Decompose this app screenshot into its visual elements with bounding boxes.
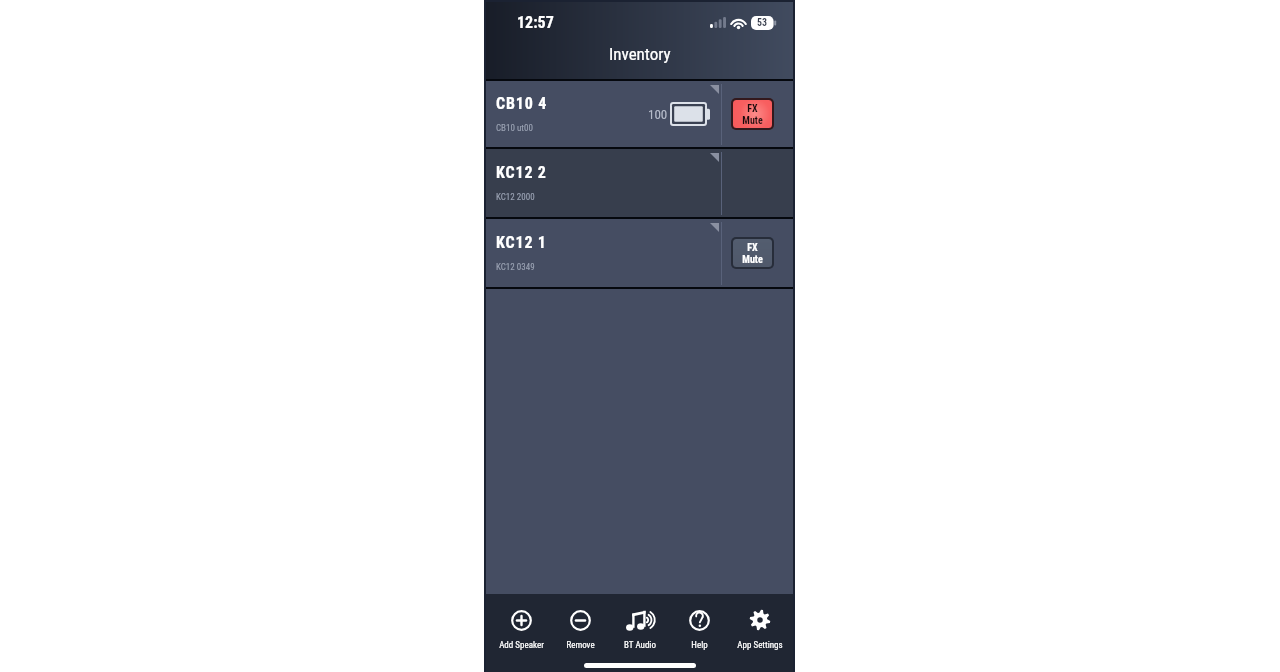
staticText: 100 <box>648 107 668 122</box>
button[interactable]: FX Mute <box>733 100 772 128</box>
staticText: App Settings <box>737 640 783 651</box>
button[interactable]: BT Audio <box>611 607 669 653</box>
staticText: KC12 0349 <box>496 262 535 273</box>
staticText: Inventory <box>609 44 671 64</box>
button[interactable]: App Settings <box>731 607 789 653</box>
staticText: Add Speaker <box>499 640 544 651</box>
button[interactable]: Help <box>670 607 728 653</box>
staticText: BT Audio <box>624 640 656 651</box>
staticText: FX Mute <box>742 103 763 126</box>
staticText: CB10 ut00 <box>496 123 533 134</box>
button[interactable]: CB10 4 <box>486 81 793 147</box>
staticText: KC12 2000 <box>496 192 535 203</box>
button[interactable]: Remove <box>551 607 609 653</box>
button[interactable]: Add Speaker <box>492 607 550 653</box>
staticText: Remove <box>566 640 595 651</box>
staticText: KC12 1 <box>496 233 547 252</box>
staticText: 12:57 <box>517 13 554 32</box>
staticText: Help <box>691 640 708 651</box>
staticText: 53 <box>757 17 768 29</box>
staticText: CB10 4 <box>496 94 548 113</box>
staticText: KC12 2 <box>496 163 547 182</box>
staticText: FX Mute <box>742 242 763 265</box>
button[interactable]: KC12 1 <box>486 219 793 287</box>
button[interactable]: FX Mute <box>733 239 772 267</box>
button[interactable]: KC12 2 <box>486 149 793 217</box>
